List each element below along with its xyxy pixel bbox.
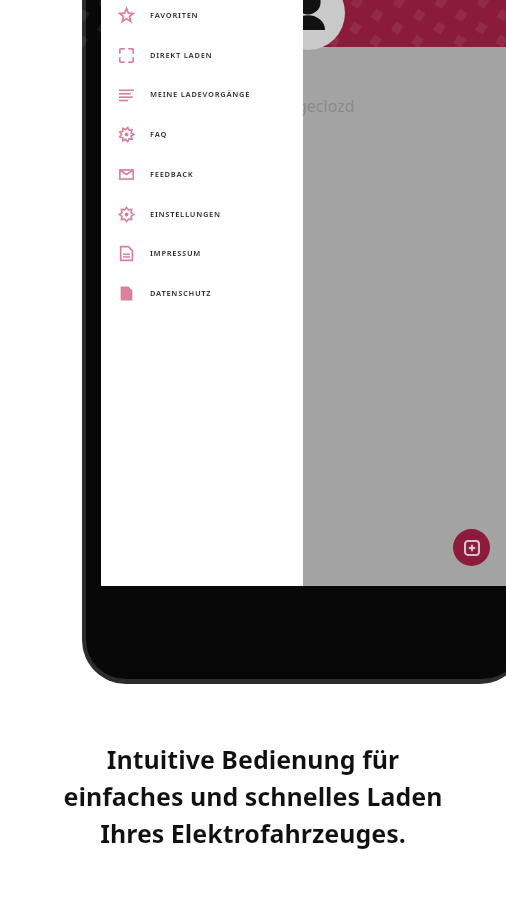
button[interactable]: EINSTELLUNGEN xyxy=(101,197,303,231)
button[interactable]: FEEDBACK xyxy=(101,157,303,191)
staticText: chargeclozd xyxy=(264,95,355,117)
button[interactable]: IMPRESSUM xyxy=(101,236,303,270)
button[interactable]: MEINE LADEVORGÄNGE xyxy=(101,77,303,111)
staticText: MEINE LADEVORGÄNGE xyxy=(150,89,251,99)
staticText: DIREKT LADEN xyxy=(150,50,213,60)
staticText: FAQ xyxy=(150,129,168,139)
staticText: FEEDBACK xyxy=(150,169,194,179)
staticText: Intuitive Bedienung für einfaches und sc… xyxy=(12,742,494,850)
staticText: FAVORITEN xyxy=(150,10,199,20)
button[interactable]: DIREKT LADEN xyxy=(101,38,303,72)
staticText: IMPRESSUM xyxy=(150,248,202,258)
button[interactable]: DATENSCHUTZ xyxy=(101,276,303,310)
button[interactable]: FAVORITEN xyxy=(101,0,303,32)
button[interactable]: FAQ xyxy=(101,117,303,151)
staticText: DATENSCHUTZ xyxy=(150,288,212,298)
staticText: EINSTELLUNGEN xyxy=(150,209,221,219)
button[interactable]: QR-Code scannen xyxy=(453,529,490,566)
